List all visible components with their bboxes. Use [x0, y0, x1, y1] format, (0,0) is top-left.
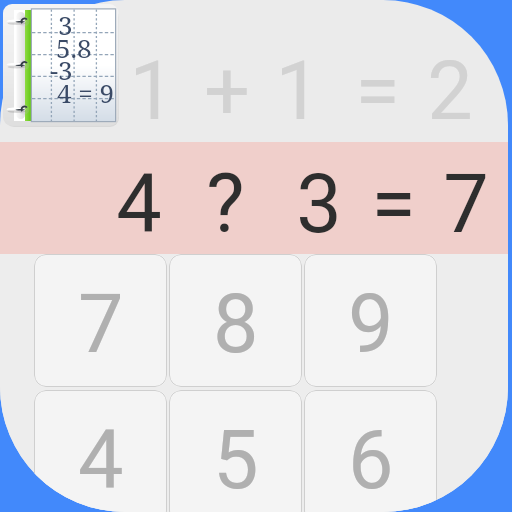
- staticText: 1: [129, 44, 175, 139]
- staticText: 7: [443, 157, 489, 252]
- staticText: 5.8: [56, 30, 92, 65]
- staticText: 4 = 9: [57, 75, 115, 110]
- staticText: 9: [348, 277, 394, 372]
- button[interactable]: 7: [34, 254, 167, 387]
- staticText: =: [355, 44, 400, 139]
- staticText: 3: [296, 157, 342, 252]
- button[interactable]: 6: [304, 390, 437, 512]
- staticText: +: [204, 44, 250, 139]
- staticText: ?: [206, 157, 245, 252]
- button[interactable]: Notebook: [3, 4, 120, 127]
- staticText: 3: [58, 7, 73, 42]
- button[interactable]: 9: [304, 254, 437, 387]
- button[interactable]: 4: [34, 390, 167, 512]
- staticText: 4: [78, 413, 124, 508]
- button[interactable]: 8: [169, 254, 302, 387]
- button[interactable]: 5: [169, 390, 302, 512]
- staticText: 8: [213, 277, 259, 372]
- staticText: 5: [213, 413, 259, 508]
- staticText: 7: [78, 277, 124, 372]
- staticText: 4: [116, 157, 162, 252]
- staticText: =: [371, 157, 416, 252]
- button[interactable]: [0, 142, 508, 254]
- staticText: -3: [50, 52, 73, 87]
- staticText: 6: [348, 413, 394, 508]
- staticText: 1: [275, 44, 321, 139]
- staticText: 2: [427, 44, 473, 139]
